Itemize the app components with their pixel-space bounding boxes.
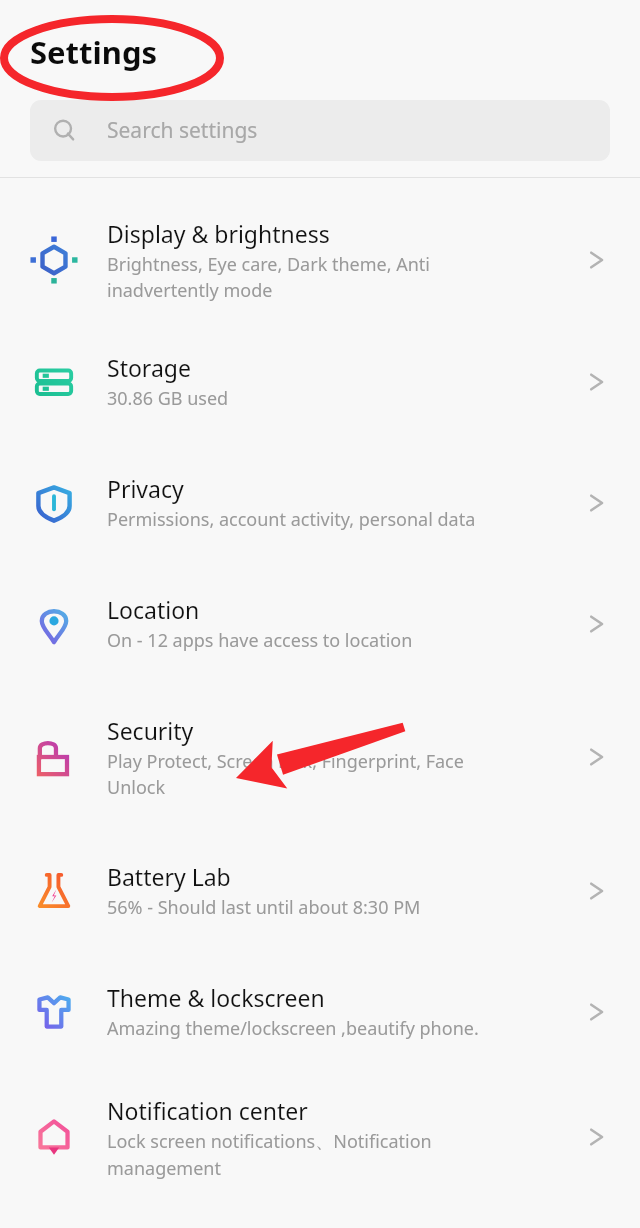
- other: Notification center: [28, 1111, 80, 1163]
- staticText: Battery Lab: [107, 861, 231, 892]
- other: Location: [28, 598, 80, 650]
- staticText: Settings: [30, 31, 158, 73]
- other: Security: [28, 731, 80, 783]
- button[interactable]: Battery Lab: [0, 830, 640, 951]
- staticText: Display & brightness: [107, 218, 330, 249]
- button[interactable]: Storage: [0, 321, 640, 442]
- button[interactable]: Privacy: [0, 442, 640, 563]
- staticText: Search settings: [107, 116, 258, 145]
- staticText: 56% - Should last until about 8:30 PM: [107, 895, 421, 920]
- button[interactable]: Security: [0, 684, 640, 830]
- staticText: Security: [107, 715, 194, 746]
- other: Theme and lockscreen: [28, 986, 80, 1038]
- staticText: Play Protect, Screen lock, Fingerprint, …: [107, 749, 464, 799]
- other: Search: [53, 119, 77, 143]
- staticText: Privacy: [107, 473, 184, 504]
- staticText: Lock screen notifications、Notification m…: [107, 1129, 432, 1180]
- button[interactable]: Location: [0, 563, 640, 684]
- staticText: Notification center: [107, 1095, 308, 1126]
- staticText: On - 12 apps have access to location: [107, 628, 413, 653]
- staticText: Theme & lockscreen: [107, 982, 325, 1013]
- staticText: 30.86 GB used: [107, 386, 229, 411]
- other: Storage: [28, 356, 80, 408]
- button[interactable]: Notification center: [0, 1072, 640, 1202]
- other: Privacy: [28, 477, 80, 529]
- other: Battery Lab: [28, 865, 80, 917]
- button[interactable]: Search: [30, 100, 610, 161]
- staticText: Permissions, account activity, personal …: [107, 507, 476, 532]
- staticText: Amazing theme/lockscreen ,beautify phone…: [107, 1016, 479, 1041]
- button[interactable]: Display and brightness: [0, 199, 640, 321]
- button[interactable]: Theme and lockscreen: [0, 951, 640, 1072]
- staticText: Location: [107, 594, 200, 625]
- staticText: Brightness, Eye care, Dark theme, Anti i…: [107, 252, 430, 302]
- staticText: Storage: [107, 352, 191, 383]
- other: Display and brightness: [28, 234, 80, 286]
